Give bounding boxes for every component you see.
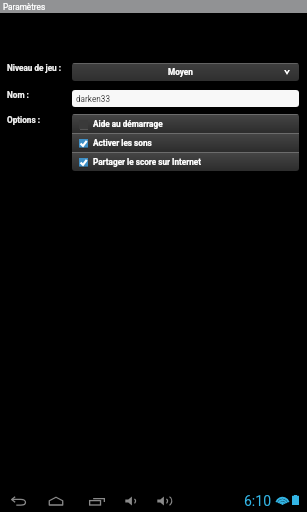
button[interactable]: darken33 <box>72 90 299 107</box>
staticText: darken33 <box>76 94 110 104</box>
button[interactable]: Volume down <box>121 490 143 512</box>
staticText: Partager le score sur Internet <box>93 157 201 167</box>
staticText: Aide au démarrage <box>93 119 163 129</box>
button[interactable]: Aide au démarrage <box>72 114 299 133</box>
staticText: Nom : <box>7 90 29 100</box>
staticText: Options : <box>7 115 40 125</box>
button[interactable]: Partager le score sur Internet <box>72 152 299 171</box>
staticText: Moyen <box>168 67 193 77</box>
staticText: Activer les sons <box>93 138 152 148</box>
staticText: Niveau de jeu : <box>7 63 62 73</box>
button[interactable]: Recents <box>86 490 108 512</box>
button[interactable]: Moyen <box>72 63 299 81</box>
button[interactable]: Volume up <box>154 490 176 512</box>
button[interactable]: Activer les sons <box>72 133 299 152</box>
button[interactable]: Home <box>45 490 67 512</box>
staticText: Paramètres <box>3 2 46 12</box>
staticText: 6:10 <box>244 493 271 509</box>
button[interactable]: Back <box>8 490 30 512</box>
